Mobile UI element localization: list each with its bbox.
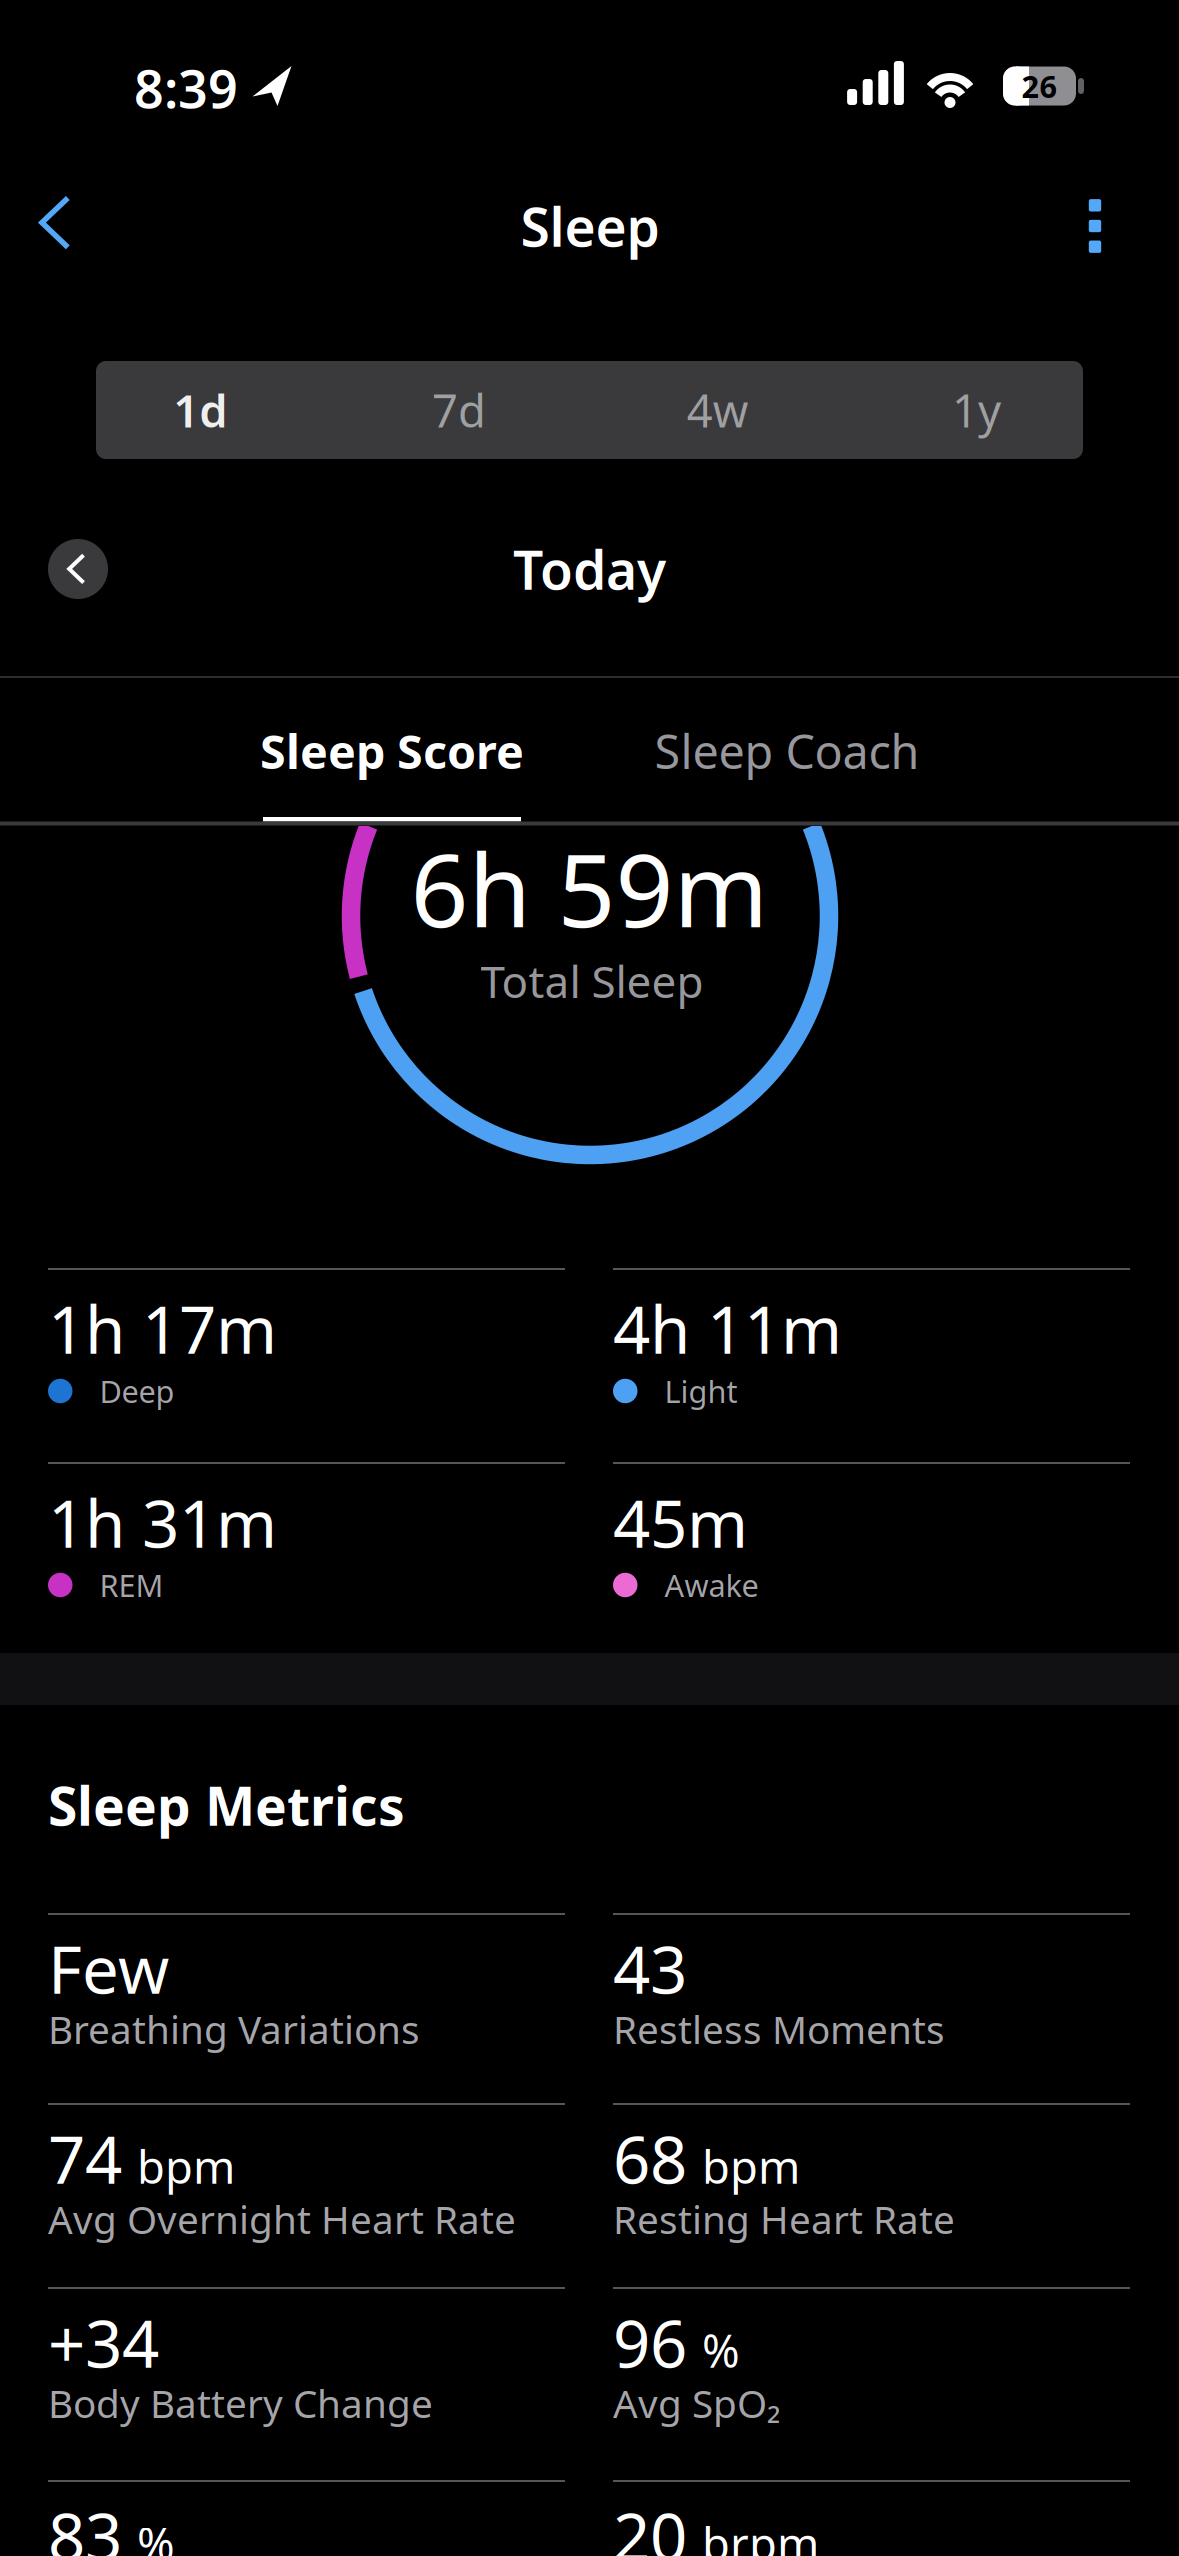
staticText: Deep [99,1371,174,1411]
staticText: % [702,2320,740,2380]
staticText: Body Battery Change [48,2377,433,2429]
staticText: Light [664,1371,737,1411]
button[interactable]: Sleep Coach [590,678,984,824]
button[interactable]: 1d [80,361,320,459]
button[interactable]: 4w [598,361,838,459]
staticText: 4w [687,380,749,440]
staticText: Resting Heart Rate [613,2193,955,2245]
staticText: 1y [952,380,1001,440]
staticText: Sleep Metrics [48,1770,405,1840]
staticText: Few [48,1925,169,2012]
button[interactable]: 7d [339,361,579,459]
staticText: 8:39 [134,53,238,123]
staticText: 96 [613,2299,687,2386]
staticText: 68 [613,2115,687,2202]
staticText: Sleep Score [260,720,524,782]
staticText: brpm [702,2513,819,2556]
staticText: 74 [48,2115,122,2202]
staticText: 6h 59m [410,821,768,955]
staticText: 20 [613,2492,687,2556]
staticText: Sleep Coach [654,720,919,782]
staticText: 26 [1021,66,1057,106]
button[interactable]: Sleep Score [195,678,589,824]
staticText: 1h 31m [48,1479,277,1566]
staticText: bpm [137,2136,235,2196]
staticText: 45m [613,1479,748,1566]
button[interactable]: Previous day [48,539,108,599]
staticText: 4h 11m [613,1285,842,1372]
staticText: 7d [432,380,486,440]
staticText: % [137,2513,175,2556]
staticText: Avg SpO₂ [613,2377,781,2429]
staticText: 83 [48,2492,122,2556]
staticText: REM [99,1565,163,1605]
button[interactable]: Back [0,168,110,278]
staticText: Breathing Variations [48,2003,420,2055]
staticText: Restless Moments [613,2003,945,2055]
staticText: Avg Overnight Heart Rate [48,2193,516,2245]
staticText: Total Sleep [480,952,703,1010]
staticText: Today [513,534,666,604]
button[interactable]: 1y [856,361,1096,459]
staticText: +34 [48,2299,159,2386]
staticText: Awake [664,1565,758,1605]
staticText: bpm [702,2136,800,2196]
staticText: 43 [613,1925,687,2012]
staticText: Sleep [520,191,659,261]
button[interactable]: More options [1060,181,1130,271]
staticText: 1h 17m [48,1285,277,1372]
staticText: 1d [173,380,227,440]
